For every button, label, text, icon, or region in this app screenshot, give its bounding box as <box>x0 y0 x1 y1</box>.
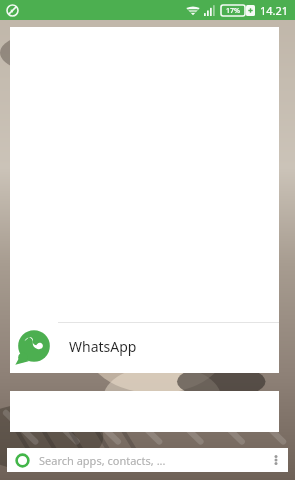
other: Voice search <box>15 453 30 468</box>
other: No SIM <box>6 4 19 17</box>
staticText: Search apps, contacts, ... <box>39 453 264 468</box>
staticText: WhatsApp <box>69 337 137 356</box>
staticText: 17% <box>226 6 240 16</box>
button[interactable]: WhatsApp <box>10 323 279 369</box>
button[interactable]: More options <box>264 448 288 472</box>
button[interactable]: Voice search <box>7 448 288 472</box>
staticText: 14.21 <box>260 3 289 18</box>
